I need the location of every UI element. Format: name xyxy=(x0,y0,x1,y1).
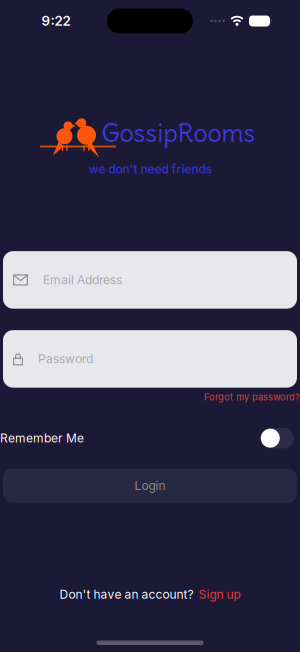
staticText: Password xyxy=(38,352,93,366)
button[interactable]: Password xyxy=(0,330,300,388)
button[interactable]: Login xyxy=(0,469,300,503)
staticText: Email Address xyxy=(43,273,122,287)
staticText: 9:22 xyxy=(41,13,70,29)
staticText: Forgot my password? xyxy=(204,392,300,403)
staticText: Login xyxy=(134,479,165,493)
button[interactable]: Remember Me xyxy=(260,428,294,449)
button[interactable]: Forgot my password? xyxy=(204,392,300,403)
button[interactable]: Email Address xyxy=(0,251,300,309)
staticText: Sign up xyxy=(198,587,240,601)
staticText: we don't need friends xyxy=(88,162,211,176)
button[interactable]: Sign up xyxy=(198,587,240,601)
staticText: Remember Me xyxy=(0,431,84,445)
staticText: GossipRooms xyxy=(101,117,255,149)
staticText: Don't have an account? xyxy=(59,587,193,601)
